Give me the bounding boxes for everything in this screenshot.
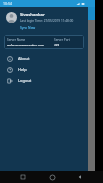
staticText: Help <box>18 67 27 72</box>
button[interactable]: Help <box>0 64 88 75</box>
button[interactable]: Recents <box>17 171 29 183</box>
staticText: Server Port <box>54 38 70 42</box>
button[interactable]: Back <box>74 171 86 183</box>
staticText: Last login Time: 27/05/2019 11:48:00 <box>20 19 74 23</box>
staticText: Server Name <box>7 38 26 42</box>
staticText: About <box>18 56 30 61</box>
button[interactable]: Server Name <box>4 35 84 49</box>
staticText: Logout <box>18 78 32 83</box>
staticText: mdm.manageengine.com <box>7 44 44 46</box>
button[interactable]: Sync Now <box>20 25 36 29</box>
staticText: Engine <box>43 172 57 177</box>
button[interactable]: Home <box>46 171 58 183</box>
button[interactable]: About <box>0 53 88 64</box>
staticText: 443 <box>54 44 60 46</box>
button[interactable]: Logout <box>0 75 88 86</box>
staticText: Sivashankar <box>20 12 45 18</box>
staticText: 10:54 <box>3 1 12 6</box>
button[interactable]: Sivashankar <box>6 12 84 29</box>
